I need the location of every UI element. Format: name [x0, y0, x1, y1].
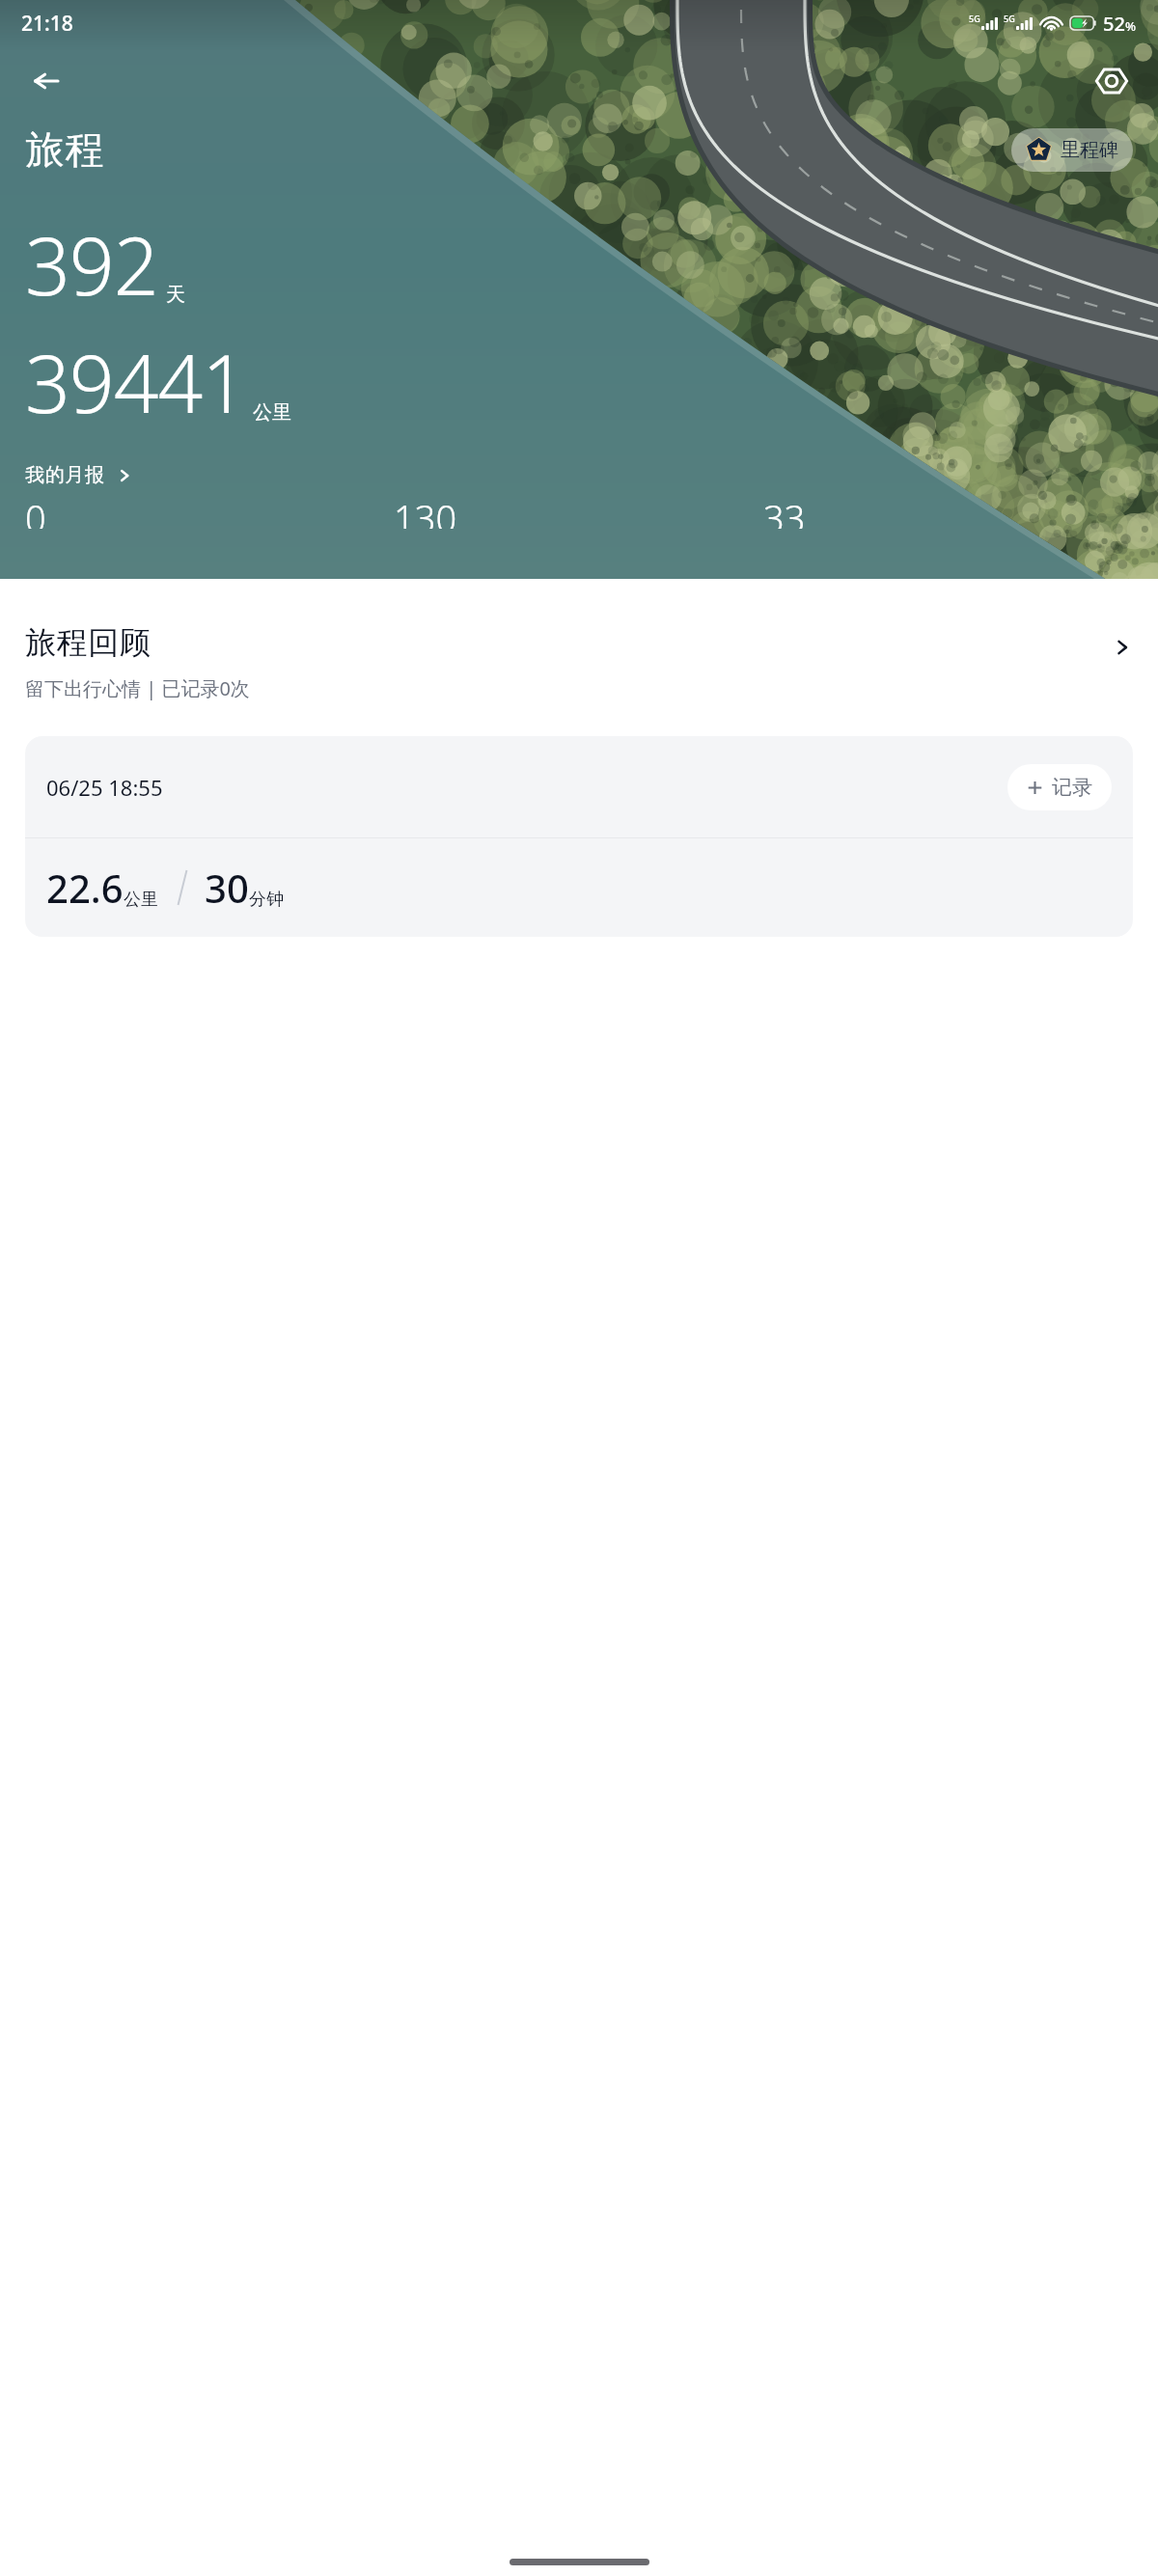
- button[interactable]: 33: [763, 493, 1133, 529]
- staticText: 公里: [253, 400, 291, 425]
- button[interactable]: 130: [394, 493, 763, 529]
- staticText: 我的月报: [25, 463, 104, 487]
- button[interactable]: 06/25 18:55: [25, 736, 1133, 937]
- staticText: 旅程: [25, 125, 104, 174]
- staticText: 21:18: [21, 10, 73, 38]
- button[interactable]: Back: [19, 54, 73, 108]
- staticText: 分钟: [249, 889, 284, 911]
- staticText: 392: [25, 210, 158, 318]
- staticText: 22.6: [46, 862, 124, 914]
- staticText: 5G: [969, 13, 980, 24]
- staticText: 0: [25, 493, 46, 529]
- staticText: 旅程回顾: [25, 623, 151, 662]
- button[interactable]: 旅程回顾: [0, 623, 1158, 701]
- staticText: 记录: [1052, 775, 1092, 800]
- staticText: 公里: [124, 889, 158, 911]
- staticText: 5G: [1004, 13, 1015, 24]
- button[interactable]: 里程碑: [1011, 128, 1133, 172]
- button[interactable]: Settings: [1085, 54, 1139, 108]
- staticText: 39441: [25, 328, 247, 436]
- staticText: 里程碑: [1061, 138, 1118, 162]
- button[interactable]: 记录: [1007, 764, 1112, 810]
- staticText: 33: [763, 493, 806, 529]
- staticText: %: [1125, 17, 1137, 35]
- staticText: 06/25 18:55: [46, 773, 163, 802]
- staticText: 52: [1103, 11, 1125, 37]
- staticText: 留下出行心情 | 已记录0次: [25, 675, 250, 701]
- staticText: 130: [394, 493, 457, 529]
- button[interactable]: 我的月报: [19, 457, 143, 493]
- staticText: 30: [205, 862, 249, 914]
- button[interactable]: 0: [25, 493, 394, 529]
- staticText: 天: [166, 283, 185, 307]
